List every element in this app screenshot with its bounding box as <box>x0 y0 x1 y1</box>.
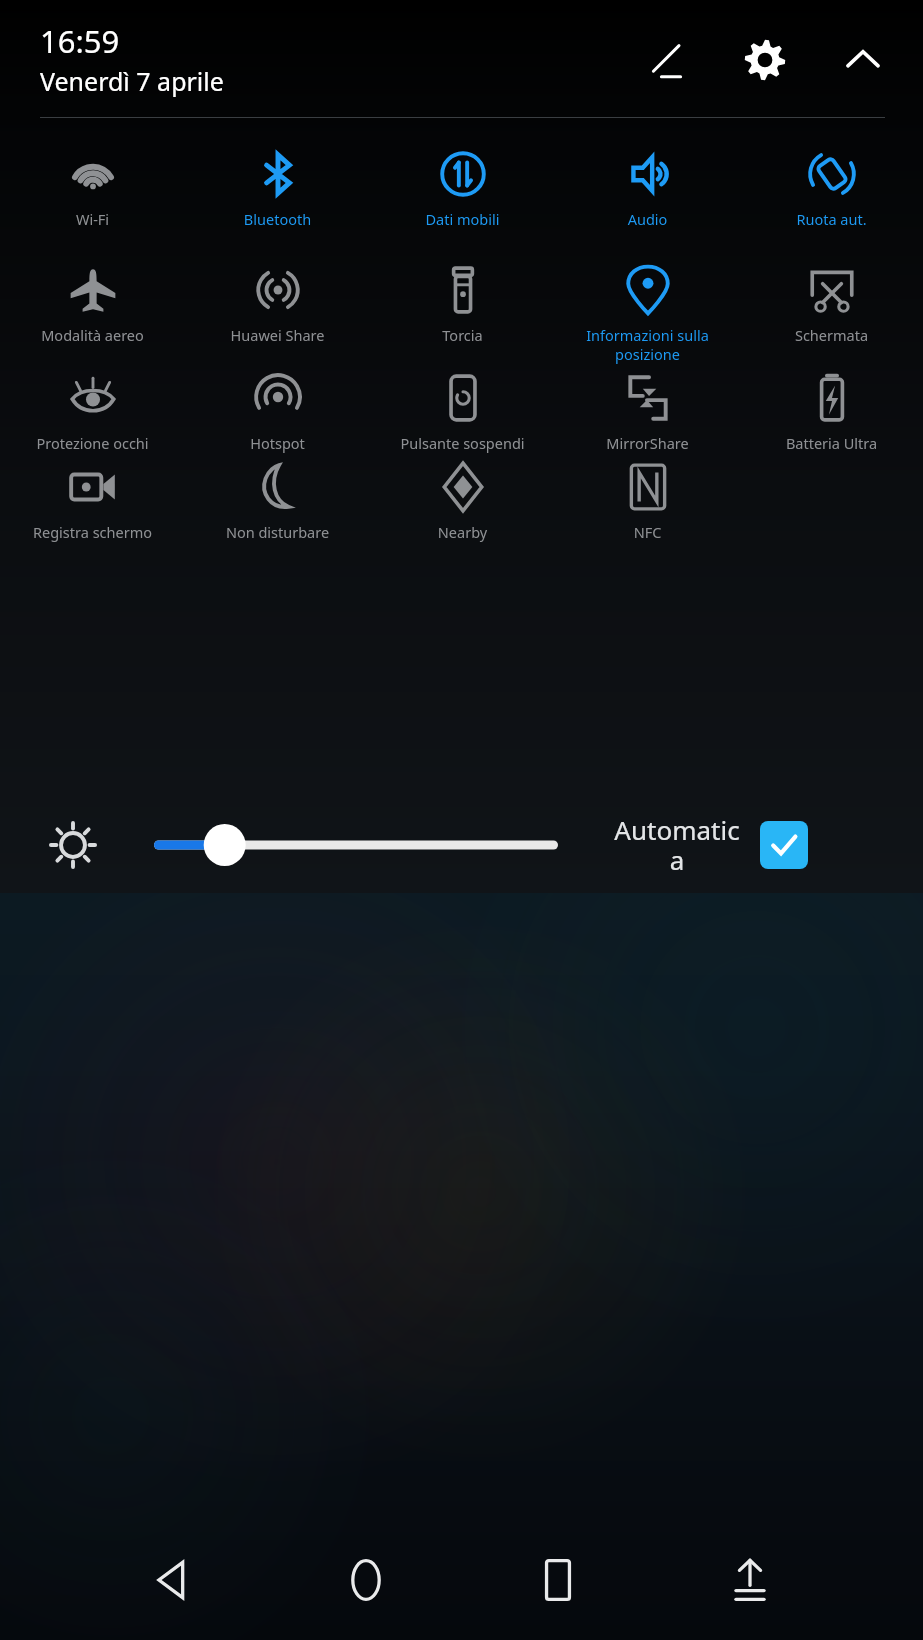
other: Bluetooth <box>252 148 304 200</box>
staticText: Automatica <box>614 812 740 878</box>
staticText: MirrorShare <box>555 433 740 453</box>
staticText: Registra schermo <box>0 522 185 542</box>
staticText: NFC <box>555 522 740 542</box>
other: Audio <box>622 148 674 200</box>
other: Nearby <box>437 461 489 513</box>
staticText: Pulsante sospendi <box>370 433 555 453</box>
button[interactable]: Protezione occhi <box>0 372 185 453</box>
other: Registra schermo <box>67 461 119 513</box>
other: Dati mobili <box>437 148 489 200</box>
button[interactable]: Audio <box>555 148 740 229</box>
staticText: Audio <box>555 209 740 229</box>
button[interactable]: MirrorShare <box>555 372 740 453</box>
other: MirrorShare <box>622 372 674 424</box>
button[interactable]: Registra schermo <box>0 461 185 542</box>
other: NFC <box>622 461 674 513</box>
staticText: Wi-Fi <box>0 209 185 229</box>
staticText: Dati mobili <box>370 209 555 229</box>
other: Informazioni sulla posizione <box>622 264 674 316</box>
button[interactable]: Hotspot <box>185 372 370 453</box>
staticText: Venerdì 7 aprile <box>40 64 224 98</box>
button[interactable]: Modalità aereo <box>0 264 185 345</box>
staticText: Nearby <box>370 522 555 542</box>
other: Torcia <box>437 264 489 316</box>
staticText: Batteria Ultra <box>740 433 923 453</box>
staticText: Ruota aut. <box>740 209 923 229</box>
button[interactable]: Automatica <box>614 812 740 878</box>
button[interactable]: Panoramica <box>513 1535 603 1625</box>
button[interactable]: Comprimi <box>833 30 893 90</box>
button[interactable]: Modifica <box>637 30 697 90</box>
button[interactable]: Non disturbare <box>185 461 370 542</box>
staticText: Schermata <box>740 325 923 345</box>
other: Protezione occhi <box>67 372 119 424</box>
other: Huawei Share <box>252 264 304 316</box>
button[interactable]: Torcia <box>370 264 555 345</box>
button[interactable]: Indietro <box>128 1535 218 1625</box>
button[interactable]: Nascondi barra di navigazione <box>705 1535 795 1625</box>
button[interactable]: Wi-Fi <box>0 148 185 229</box>
staticText: Protezione occhi <box>0 433 185 453</box>
other: Non disturbare <box>252 461 304 513</box>
staticText: Non disturbare <box>185 522 370 542</box>
button[interactable]: Dati mobili <box>370 148 555 229</box>
other: Wi-Fi <box>67 148 119 200</box>
button[interactable]: Luminosità <box>42 814 104 876</box>
button[interactable]: Impostazioni <box>735 30 795 90</box>
other: Ruota aut. <box>806 148 858 200</box>
button[interactable]: Bluetooth <box>185 148 370 229</box>
button[interactable]: Luminosità automatica attiva <box>760 821 808 869</box>
other: Batteria Ultra <box>806 372 858 424</box>
staticText: Hotspot <box>185 433 370 453</box>
button[interactable]: Home <box>321 1535 411 1625</box>
button[interactable]: NFC <box>555 461 740 542</box>
staticText: Huawei Share <box>185 325 370 345</box>
other: Schermata <box>806 264 858 316</box>
button[interactable]: Schermata <box>740 264 923 345</box>
staticText: Torcia <box>370 325 555 345</box>
button[interactable]: Nearby <box>370 461 555 542</box>
button[interactable]: Ruota aut. <box>740 148 923 229</box>
staticText: 16:59 <box>40 20 120 62</box>
other: Hotspot <box>252 372 304 424</box>
button[interactable]: Huawei Share <box>185 264 370 345</box>
other: Modalità aereo <box>67 264 119 316</box>
button[interactable]: Batteria Ultra <box>740 372 923 453</box>
staticText: Modalità aereo <box>0 325 185 345</box>
button[interactable]: Cursore luminosità <box>154 817 558 873</box>
button[interactable]: Pulsante sospendi <box>370 372 555 453</box>
button[interactable]: Informazioni sulla posizione <box>555 264 740 364</box>
other: Pulsante sospendi <box>437 372 489 424</box>
staticText: Bluetooth <box>185 209 370 229</box>
staticText: Informazioni sulla posizione <box>555 325 740 364</box>
